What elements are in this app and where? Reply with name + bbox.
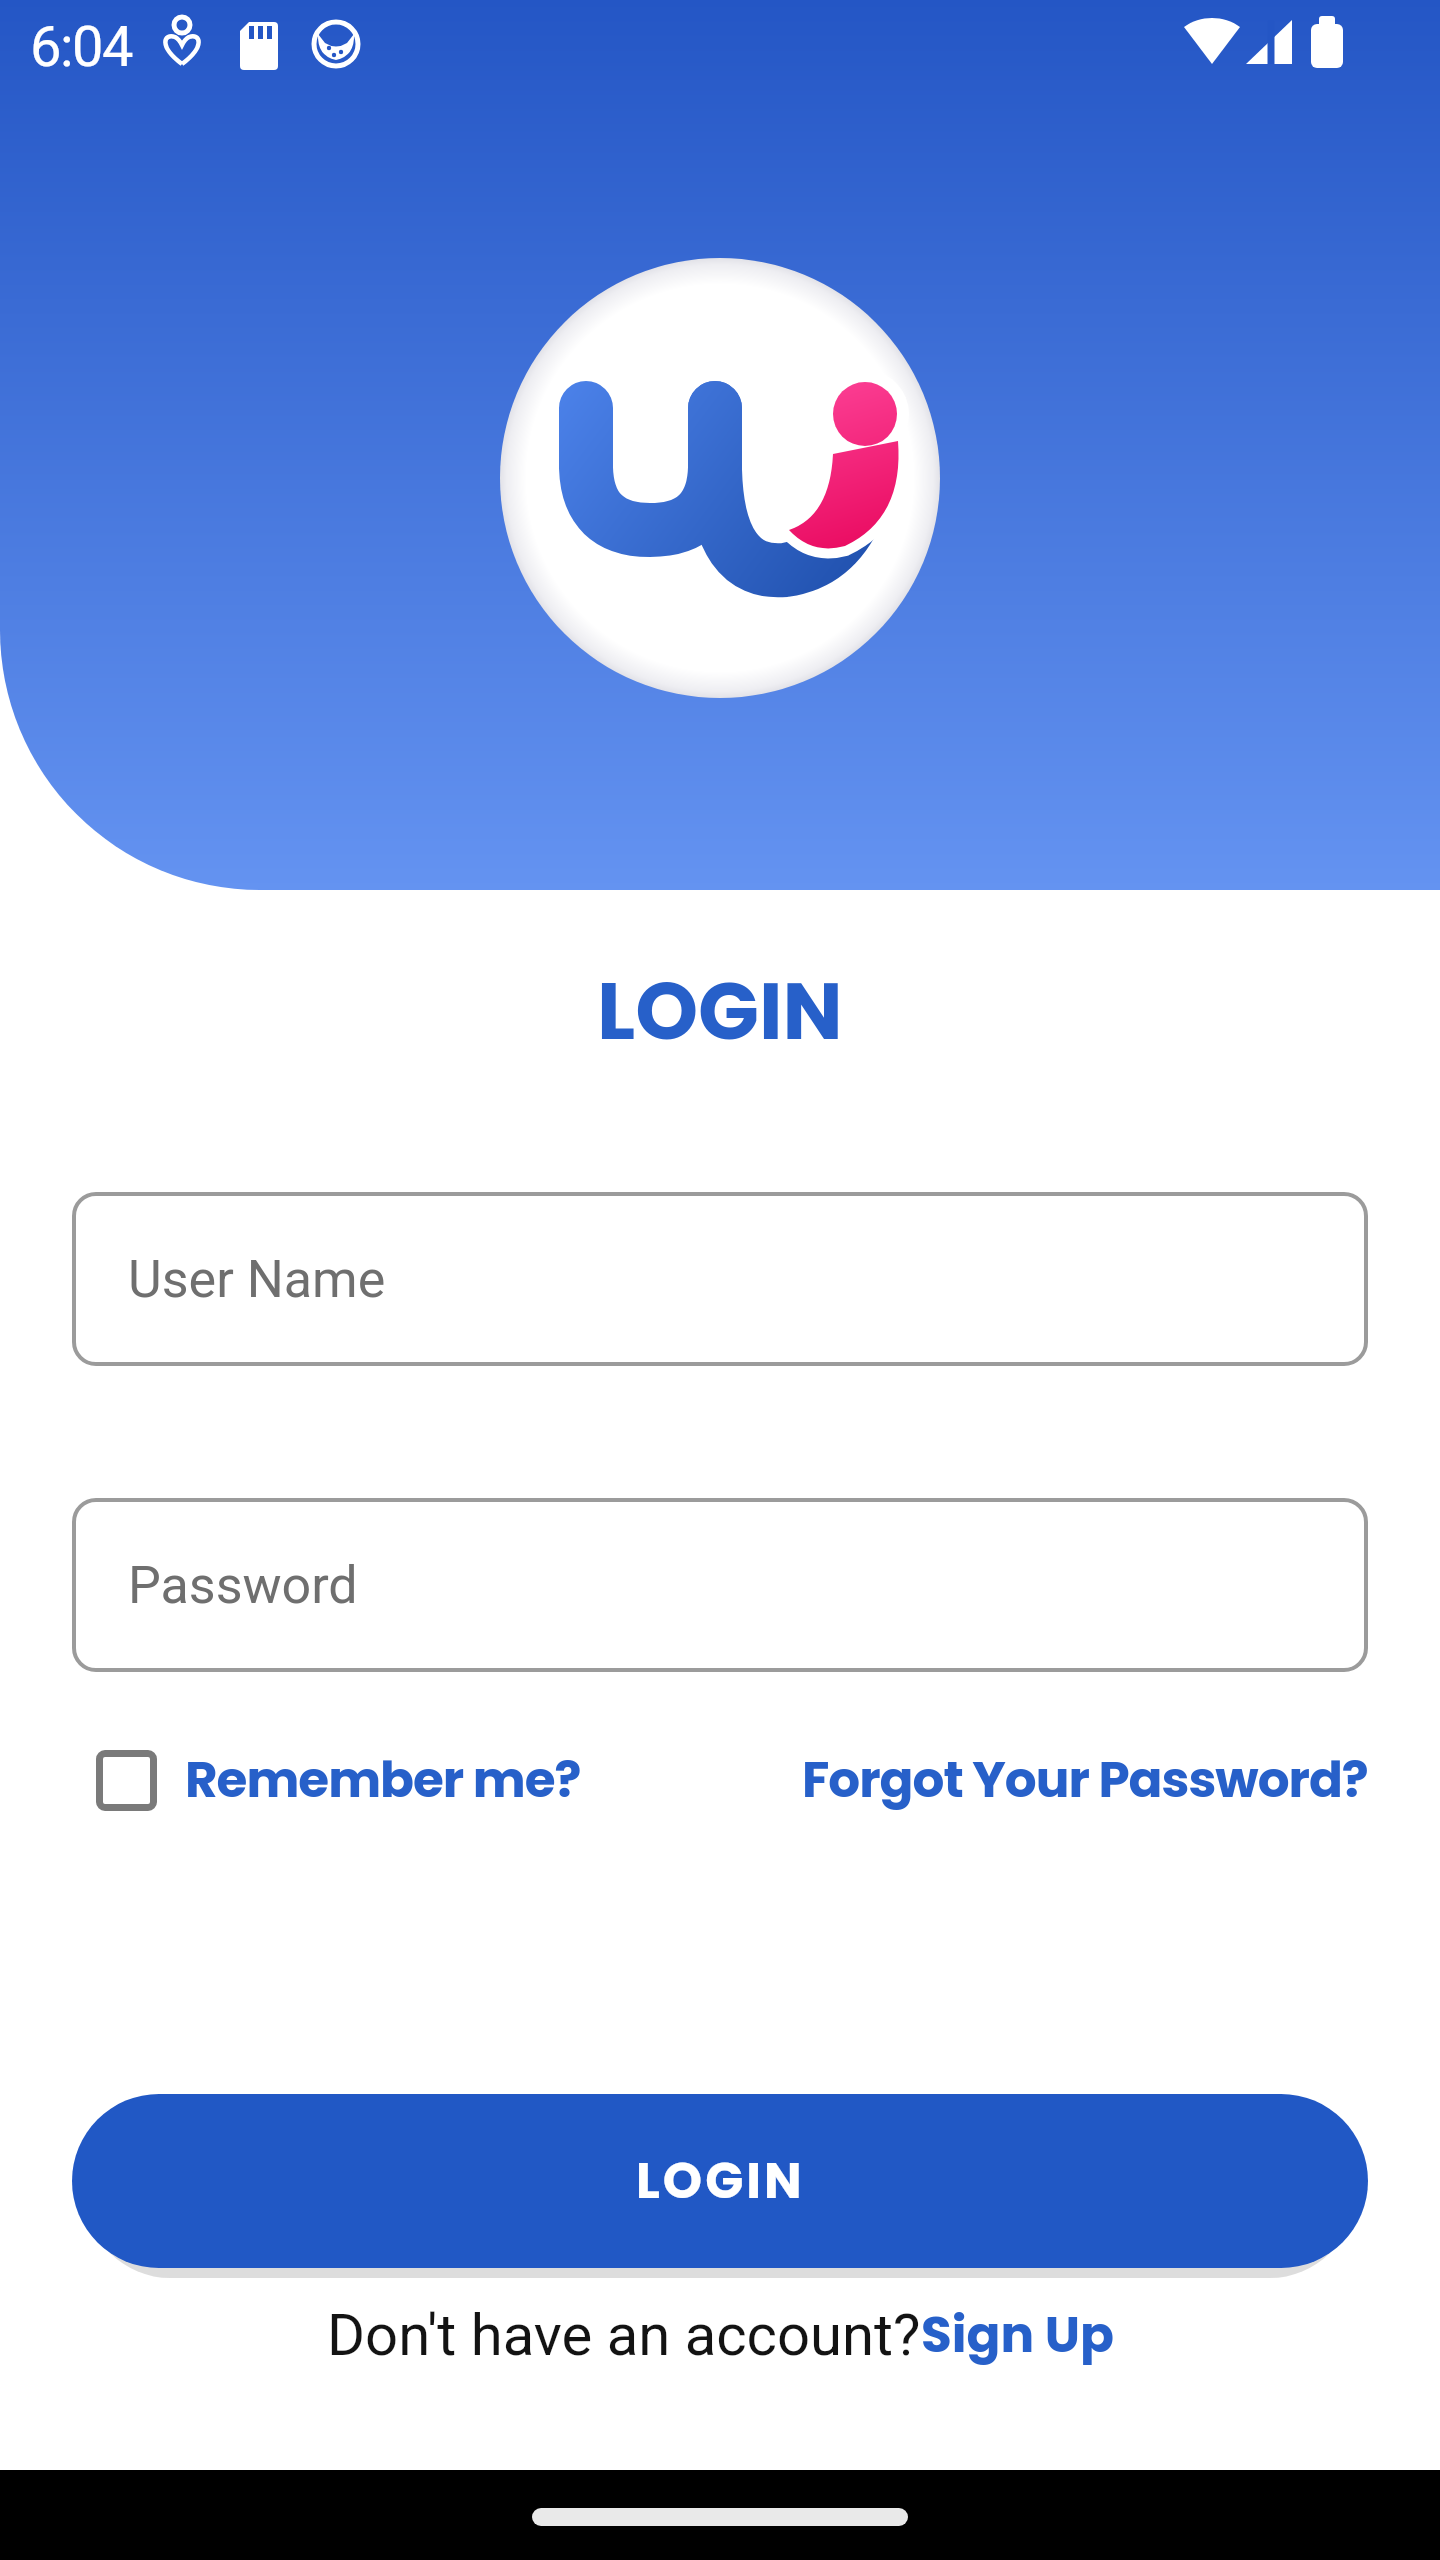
staticText: LOGIN: [636, 2146, 805, 2216]
staticText: User Name: [128, 1249, 386, 1310]
staticText: Don't have an account?: [327, 2301, 921, 2369]
button[interactable]: User Name: [72, 1192, 1368, 1366]
button[interactable]: Password: [72, 1498, 1368, 1672]
button[interactable]: Remember me?: [185, 1745, 581, 1815]
button[interactable]: LOGIN: [72, 2094, 1368, 2268]
staticText: Password: [128, 1555, 358, 1616]
button[interactable]: Sign Up: [921, 2300, 1114, 2370]
button[interactable]: [96, 1750, 157, 1811]
button[interactable]: Forgot Your Password?: [802, 1745, 1368, 1815]
staticText: LOGIN: [597, 955, 843, 1067]
staticText: 6:04: [30, 14, 132, 80]
